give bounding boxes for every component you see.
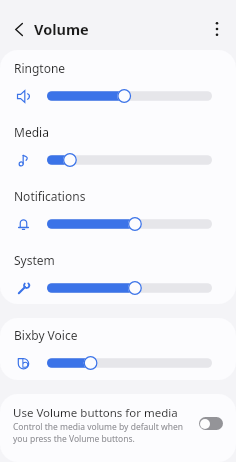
staticText: Control the media volume by default when… [13, 421, 193, 444]
button[interactable] [43, 353, 216, 373]
button[interactable]: Navigate up [5, 11, 33, 47]
staticText: System [14, 252, 55, 268]
staticText: Ringtone [14, 60, 66, 76]
button[interactable] [43, 86, 216, 106]
button[interactable] [43, 214, 216, 234]
staticText: Volume [34, 19, 89, 39]
button[interactable] [43, 150, 216, 170]
button[interactable]: Use Volume buttons for media [199, 417, 223, 430]
staticText: Media [14, 124, 49, 140]
button[interactable] [43, 278, 216, 298]
staticText: Bixby Voice [14, 327, 78, 343]
staticText: Notifications [14, 188, 86, 204]
button[interactable]: Use Volume buttons for media [0, 394, 236, 462]
button[interactable]: More options [202, 11, 231, 47]
staticText: Use Volume buttons for media [13, 405, 178, 421]
